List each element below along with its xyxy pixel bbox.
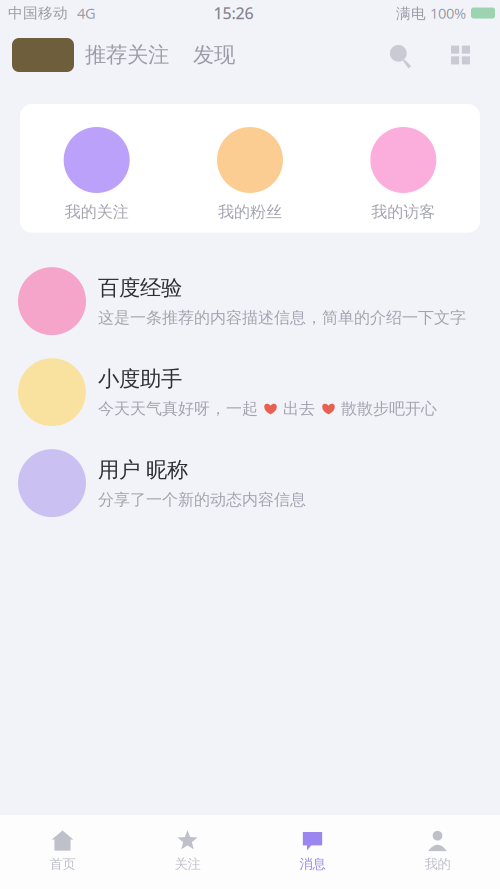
staticText: 我的访客 (371, 202, 435, 222)
button[interactable]: 消息 (250, 818, 375, 886)
button[interactable]: 关注 (125, 818, 250, 886)
staticText: 推荐关注 (85, 42, 169, 68)
button[interactable]: 推荐关注 (74, 42, 180, 68)
staticText: 分享了一个新的动态内容信息 (98, 490, 306, 510)
staticText: 4G (77, 3, 96, 23)
staticText: 满电 100% (396, 3, 466, 23)
button[interactable]: 我的访客 (327, 127, 480, 222)
staticText: 消息 (299, 856, 325, 872)
staticText: 我的粉丝 (218, 202, 282, 222)
staticText: 15:26 (213, 2, 253, 24)
button[interactable]: 用户 昵称 (0, 438, 500, 529)
button[interactable]: 搜索 (386, 41, 414, 69)
button[interactable]: 我的 (375, 818, 500, 886)
button[interactable]: 我的关注 (20, 127, 173, 222)
staticText: 我的关注 (65, 202, 129, 222)
staticText: 我的 (424, 856, 450, 872)
button[interactable]: 品牌 (12, 38, 74, 72)
staticText: 中国移动 (8, 4, 68, 22)
staticText: 关注 (174, 856, 200, 872)
staticText: 今天天气真好呀，一起 (98, 399, 258, 419)
staticText: 用户 昵称 (98, 457, 188, 483)
button[interactable]: 小度助手 (0, 347, 500, 438)
staticText: 出去 (283, 399, 315, 419)
staticText: 百度经验 (98, 275, 182, 301)
button[interactable]: 分类 (447, 41, 474, 68)
button[interactable]: 首页 (0, 818, 125, 886)
button[interactable]: 我的粉丝 (173, 127, 327, 222)
staticText: 小度助手 (98, 366, 182, 392)
button[interactable]: 百度经验 (0, 256, 500, 347)
staticText: 发现 (193, 42, 235, 68)
staticText: 散散步吧开心 (341, 399, 437, 419)
staticText: 首页 (49, 856, 75, 872)
button[interactable]: 发现 (180, 42, 248, 68)
staticText: 这是一条推荐的内容描述信息，简单的介绍一下文字 (98, 308, 466, 328)
